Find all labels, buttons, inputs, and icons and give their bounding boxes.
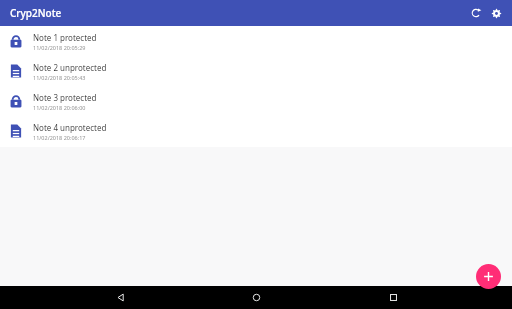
button[interactable]: Back xyxy=(103,286,137,309)
staticText: Cryp2Note xyxy=(10,6,62,20)
button[interactable]: Note 4 unprotected xyxy=(0,116,512,146)
staticText: 11/02/2018 20:05:29 xyxy=(33,44,86,51)
button[interactable]: Home xyxy=(239,286,273,309)
staticText: Note 1 protected xyxy=(33,32,97,43)
staticText: 11/02/2018 20:05:43 xyxy=(33,74,86,81)
button[interactable]: Note 3 protected xyxy=(0,86,512,116)
staticText: Note 2 unprotected xyxy=(33,62,107,73)
staticText: 11/02/2018 20:06:17 xyxy=(33,134,86,141)
button[interactable]: Note 1 protected xyxy=(0,26,512,56)
button[interactable]: Refresh xyxy=(466,3,486,23)
staticText: Note 4 unprotected xyxy=(33,122,107,133)
button[interactable]: Recent apps xyxy=(376,286,410,309)
button[interactable]: Note 2 unprotected xyxy=(0,56,512,86)
button[interactable]: Settings xyxy=(486,3,506,23)
button[interactable]: Add note xyxy=(476,264,501,289)
staticText: Note 3 protected xyxy=(33,92,97,103)
staticText: 11/02/2018 20:06:00 xyxy=(33,104,86,111)
